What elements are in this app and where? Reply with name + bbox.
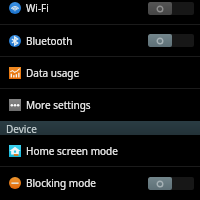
staticText: Bluetooth <box>26 34 73 48</box>
button[interactable]: Wi-Fi <box>0 0 200 24</box>
staticText: Home screen mode <box>26 144 118 158</box>
button[interactable]: Data usage <box>0 57 200 88</box>
staticText: Device <box>6 122 37 136</box>
staticText: Data usage <box>26 66 80 80</box>
button[interactable]: More settings <box>0 89 200 121</box>
staticText: Blocking mode <box>26 176 96 190</box>
button[interactable]: Bluetooth <box>0 25 200 56</box>
button[interactable]: Home screen mode <box>0 135 200 166</box>
staticText: More settings <box>26 98 91 112</box>
button[interactable]: Toggle <box>148 34 194 47</box>
button[interactable]: Blocking mode <box>0 167 200 199</box>
button[interactable]: Toggle <box>148 2 194 15</box>
staticText: Wi-Fi <box>26 1 49 15</box>
button[interactable]: Toggle <box>148 177 194 190</box>
